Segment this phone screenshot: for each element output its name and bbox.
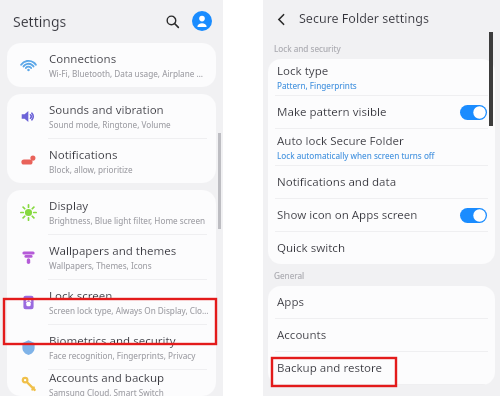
- button[interactable]: Backup and restore: [268, 352, 495, 384]
- staticText: Wi-Fi, Bluetooth, Data usage, Airplane m…: [49, 68, 209, 79]
- button[interactable]: Display: [7, 190, 216, 234]
- staticText: Notifications and data: [277, 174, 397, 190]
- staticText: Backup and restore: [277, 360, 383, 376]
- staticText: Lock screen: [49, 288, 113, 304]
- button[interactable]: Account: [192, 11, 212, 31]
- button[interactable]: Lock type: [268, 59, 495, 95]
- staticText: Apps: [277, 294, 305, 310]
- button[interactable]: Make pattern visible: [268, 96, 495, 128]
- staticText: Settings: [13, 12, 67, 31]
- button[interactable]: Apps: [268, 286, 495, 318]
- button[interactable]: Auto lock Secure Folder: [268, 129, 495, 165]
- button[interactable]: Show icon on Apps screen: [268, 199, 495, 231]
- button[interactable]: Back: [270, 8, 292, 30]
- button[interactable]: Wallpapers and themes: [7, 235, 216, 279]
- staticText: Accounts: [277, 327, 327, 343]
- staticText: General: [274, 270, 305, 281]
- button[interactable]: Toggle Make pattern visible: [460, 105, 487, 120]
- button[interactable]: Biometrics and security: [7, 325, 216, 369]
- staticText: Screen lock type, Always On Display, Clo…: [49, 305, 209, 316]
- staticText: Show icon on Apps screen: [277, 207, 418, 223]
- button[interactable]: Accounts: [268, 319, 495, 351]
- staticText: Display: [49, 198, 89, 214]
- staticText: Wallpapers and themes: [49, 243, 177, 259]
- staticText: Face recognition, Fingerprints, Privacy: [49, 350, 196, 361]
- button[interactable]: Sounds and vibration: [7, 94, 216, 138]
- staticText: Connections: [49, 51, 117, 67]
- staticText: Pattern, Fingerprints: [277, 80, 357, 91]
- button[interactable]: Connections: [7, 43, 216, 87]
- staticText: Sound mode, Ringtone, Volume: [49, 119, 171, 130]
- staticText: Samsung Cloud, Smart Switch: [49, 387, 164, 396]
- staticText: Brightness, Blue light filter, Home scre…: [49, 215, 206, 226]
- staticText: Block, allow, prioritize: [49, 164, 133, 175]
- staticText: Lock and security: [274, 43, 341, 54]
- staticText: Wallpapers, Themes, Icons: [49, 260, 152, 271]
- button[interactable]: Lock screen: [7, 280, 216, 324]
- staticText: Notifications: [49, 147, 118, 163]
- staticText: Biometrics and security: [49, 333, 176, 349]
- staticText: Quick switch: [277, 240, 345, 256]
- button[interactable]: Quick switch: [268, 232, 495, 264]
- staticText: Sounds and vibration: [49, 102, 164, 118]
- button[interactable]: Search: [161, 10, 183, 32]
- staticText: Accounts and backup: [49, 370, 165, 386]
- staticText: Secure Folder settings: [299, 10, 429, 27]
- staticText: Auto lock Secure Folder: [277, 133, 404, 149]
- button[interactable]: Notifications: [7, 139, 216, 183]
- staticText: Lock type: [277, 63, 329, 79]
- button[interactable]: Notifications and data: [268, 166, 495, 198]
- button[interactable]: Toggle Show icon on Apps screen: [460, 208, 487, 223]
- staticText: Lock automatically when screen turns off: [277, 150, 435, 161]
- staticText: Make pattern visible: [277, 104, 387, 120]
- button[interactable]: Accounts and backup: [7, 370, 216, 396]
